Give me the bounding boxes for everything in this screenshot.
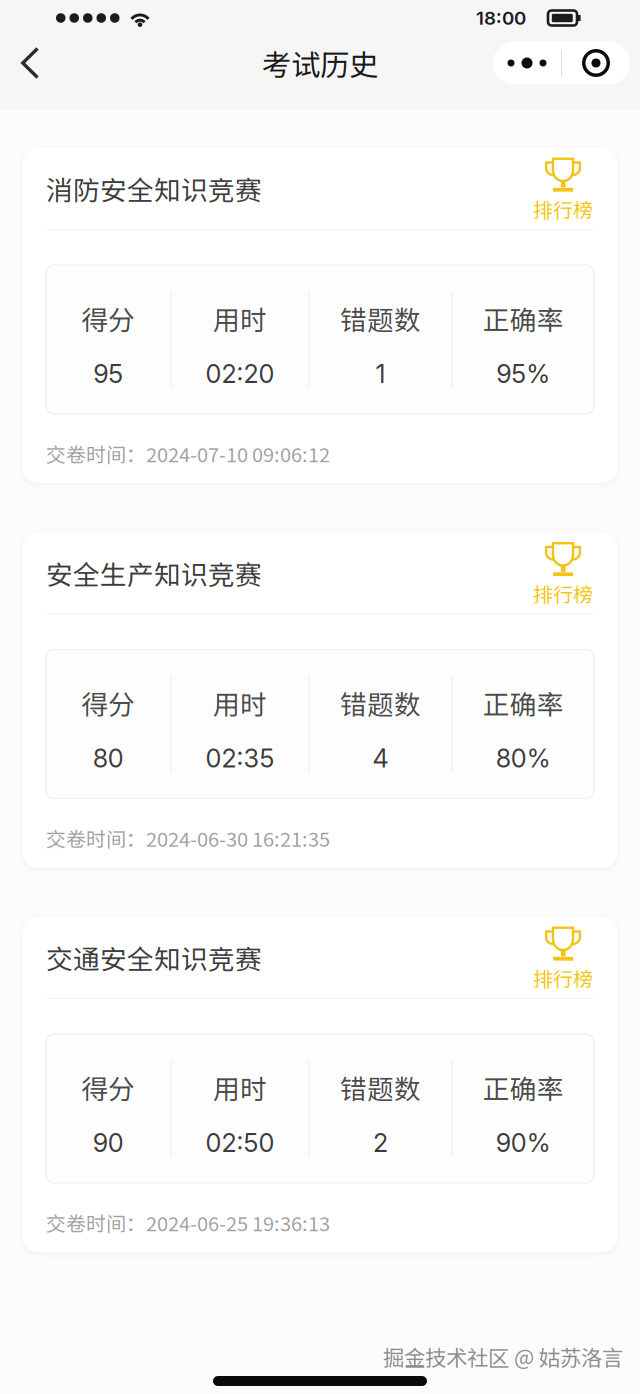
button[interactable]: Close — [562, 41, 630, 84]
staticText: 18:00 — [476, 7, 526, 29]
staticText: 得分 — [81, 683, 135, 722]
button[interactable]: 排行榜 — [532, 540, 594, 606]
staticText: 得分 — [81, 1068, 135, 1107]
staticText: 得分 — [81, 299, 135, 338]
staticText: 80 — [93, 743, 124, 773]
staticText: 错题数 — [340, 683, 421, 722]
staticText: 交通安全知识竞赛 — [46, 938, 262, 977]
staticText: 错题数 — [340, 299, 421, 338]
staticText: 交卷时间：2024-07-10 09:06:12 — [46, 439, 330, 468]
button[interactable]: Back — [8, 34, 52, 92]
staticText: 考试历史 — [262, 42, 378, 84]
staticText: 排行榜 — [533, 194, 593, 223]
staticText: 用时 — [213, 683, 267, 722]
staticText: 排行榜 — [533, 579, 593, 608]
staticText: 安全生产知识竞赛 — [46, 554, 262, 592]
staticText: 80% — [496, 743, 551, 773]
staticText: 消防安全知识竞赛 — [46, 169, 262, 208]
staticText: 用时 — [213, 1068, 267, 1107]
button[interactable]: More — [493, 41, 561, 84]
staticText: 交卷时间：2024-06-25 19:36:13 — [46, 1208, 330, 1237]
button[interactable]: 排行榜 — [532, 155, 594, 221]
staticText: 4 — [372, 743, 388, 773]
staticText: 错题数 — [340, 1068, 421, 1107]
staticText: 02:20 — [205, 358, 274, 389]
staticText: 1 — [375, 358, 385, 389]
staticText: 正确率 — [483, 1068, 564, 1107]
staticText: 02:50 — [205, 1127, 274, 1158]
staticText: 正确率 — [483, 683, 564, 722]
staticText: 02:35 — [205, 743, 274, 773]
staticText: 掘金技术社区 @ 姑苏洛言 — [383, 1341, 623, 1372]
button[interactable]: 排行榜 — [532, 924, 594, 990]
staticText: 2 — [373, 1127, 388, 1158]
staticText: 90 — [93, 1127, 124, 1158]
staticText: 排行榜 — [533, 963, 593, 992]
staticText: 95 — [93, 358, 123, 389]
staticText: 90% — [496, 1127, 551, 1158]
staticText: 用时 — [213, 299, 267, 338]
staticText: 正确率 — [483, 299, 564, 338]
staticText: 交卷时间：2024-06-30 16:21:35 — [46, 823, 330, 852]
staticText: 95% — [496, 358, 550, 389]
